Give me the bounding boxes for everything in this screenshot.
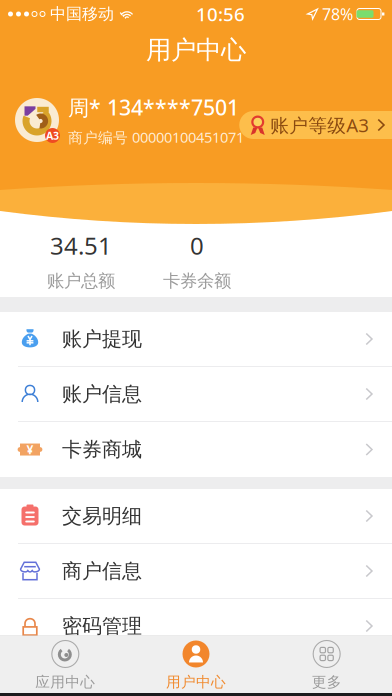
button[interactable]: 账户等级A3 [239,111,392,139]
staticText: 卡券余额 [163,270,231,292]
staticText: 账户总额 [47,270,115,292]
button[interactable]: 应用中心 [0,634,131,695]
button[interactable]: 交易明细 [0,489,392,544]
staticText: 账户提现 [62,327,142,351]
staticText: 卡券商城 [62,437,142,462]
button[interactable]: 密码管理 [0,599,392,654]
staticText: 用户中心 [146,34,246,65]
staticText: 78% [322,3,353,25]
staticText: 账户信息 [62,382,142,406]
staticText: 周* 134****7501 [68,93,239,121]
button[interactable]: 账户提现 [0,312,392,367]
staticText: 账户等级A3 [270,113,369,137]
staticText: 34.51 [50,229,112,261]
staticText: 商户编号 00000100451071 [68,127,244,147]
staticText: 应用中心 [35,673,95,691]
button[interactable]: 商户信息 [0,544,392,599]
staticText: 0 [190,229,204,261]
button[interactable]: 用户中心 [131,634,261,695]
staticText: A3 [46,128,59,143]
staticText: 用户中心 [166,673,226,691]
button[interactable]: 更多 [261,634,392,695]
button[interactable]: ¥ [0,422,392,477]
button[interactable]: 账户信息 [0,367,392,422]
staticText: 密码管理 [62,614,142,638]
staticText: 10:56 [196,2,245,26]
staticText: 更多 [312,673,342,691]
staticText: 商户信息 [62,559,142,583]
staticText: ¥ [26,441,33,457]
staticText: 交易明细 [62,504,142,528]
staticText: 中国移动 [50,4,114,24]
